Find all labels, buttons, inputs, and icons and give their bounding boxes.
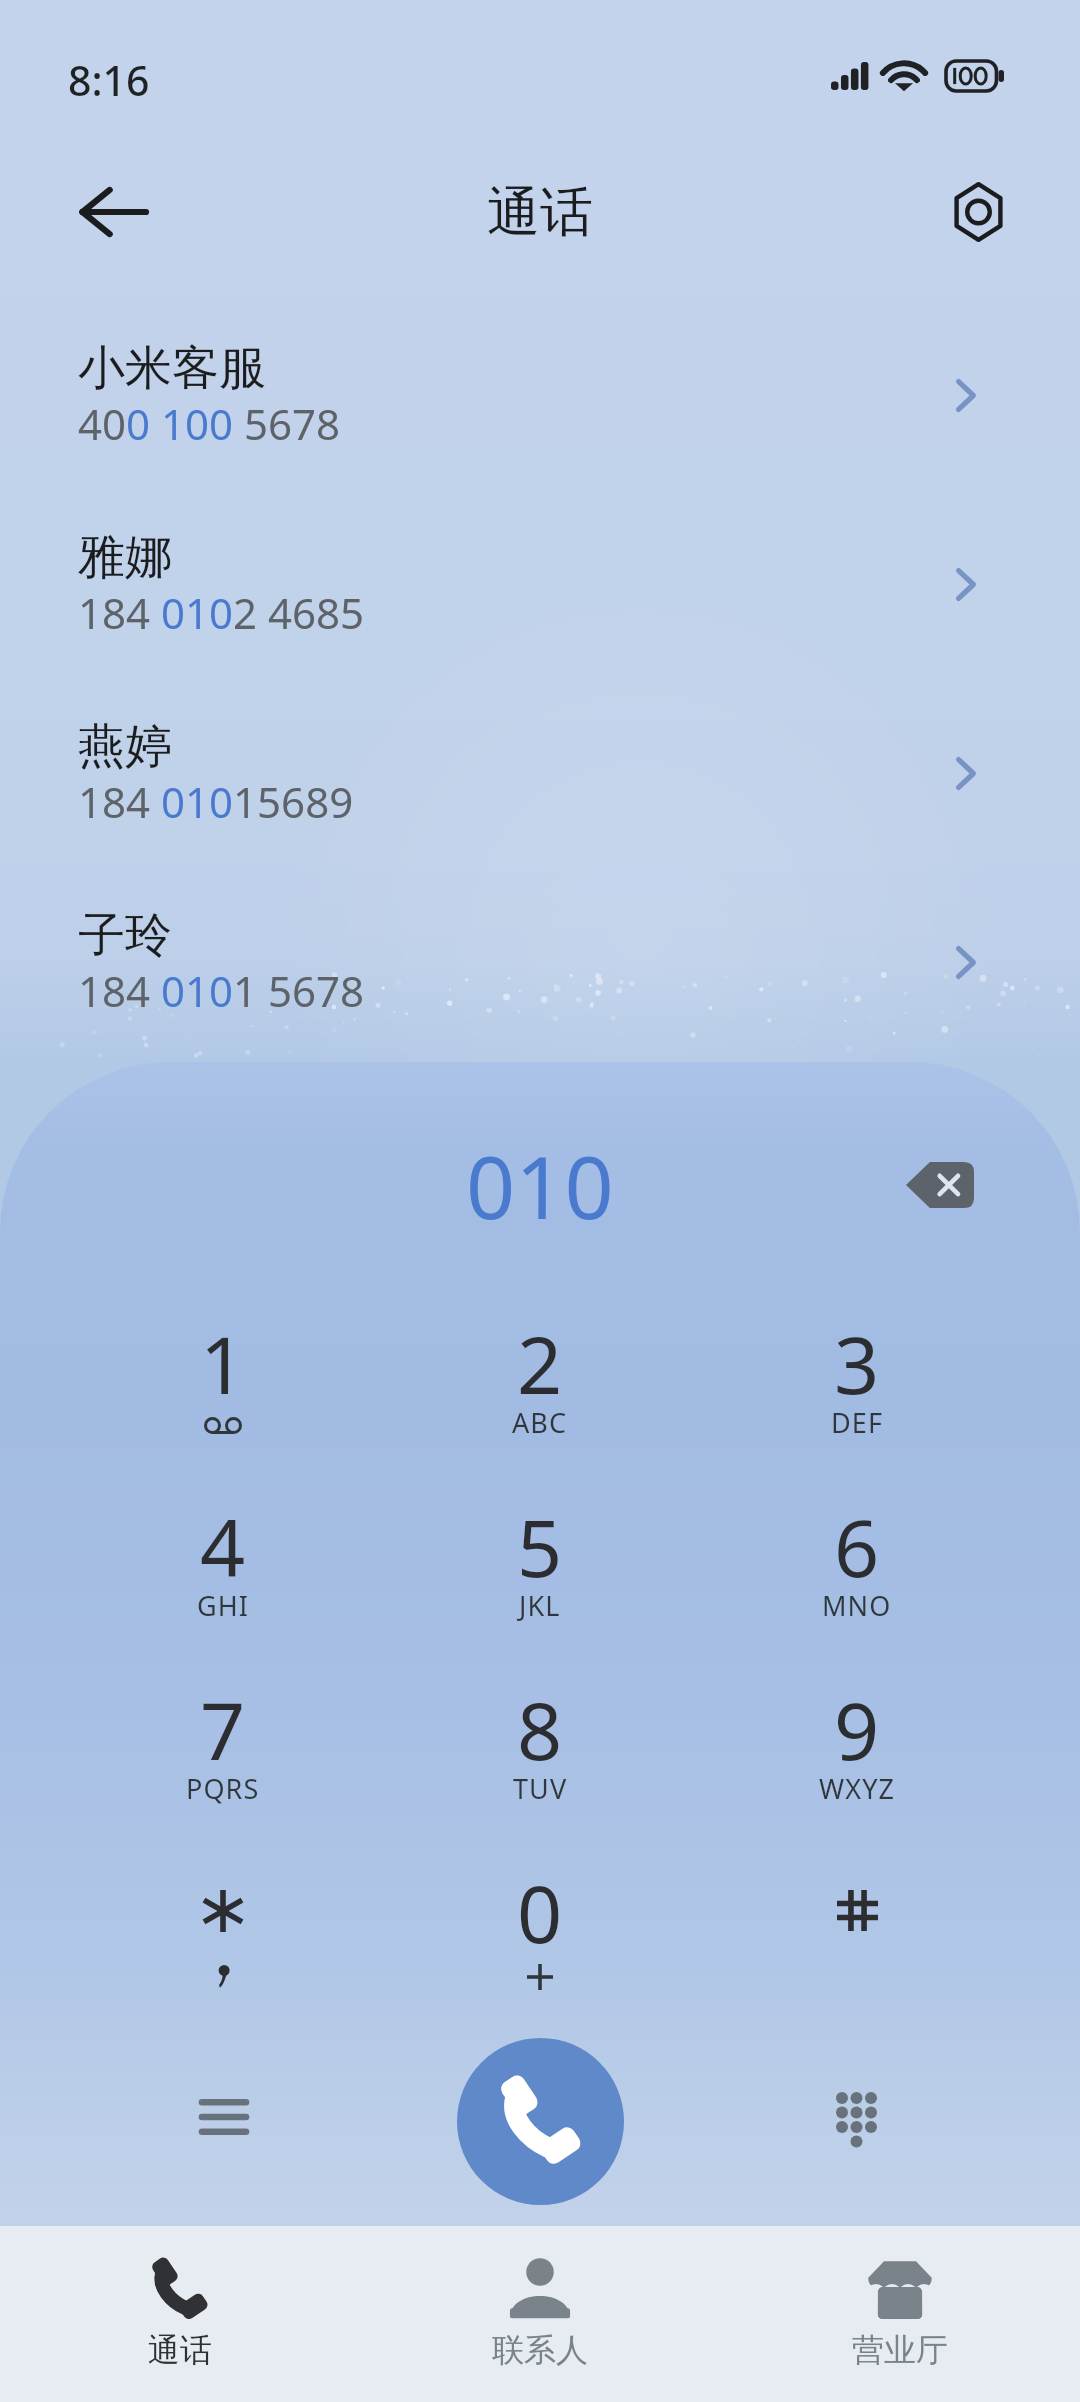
staticText: 184 0102 4685 [78,584,365,641]
staticText: DEF [831,1404,884,1441]
staticText: 1 [200,1310,246,1418]
button[interactable]: 燕婷 [0,656,1080,845]
button[interactable]: 1 [113,1274,333,1457]
staticText: 9 [834,1676,880,1784]
staticText: 雅娜 [78,528,172,587]
staticText: TUV [513,1770,568,1807]
staticText: 3 [834,1310,880,1418]
staticText: 8 [517,1676,563,1784]
button[interactable]: 营业厅 [720,2226,1080,2402]
button[interactable]: Back [48,140,178,284]
staticText: 5 [517,1493,563,1601]
button[interactable]: 6 [747,1457,967,1640]
button[interactable] [113,1823,333,2006]
staticText: 通话 [148,2330,212,2370]
button[interactable]: 雅娜 [0,467,1080,656]
staticText: 2 [517,1310,563,1418]
staticText: 010 [466,1127,614,1244]
button[interactable]: Call [457,2038,624,2205]
staticText: WXYZ [819,1770,896,1807]
staticText: ABC [512,1404,568,1441]
staticText: 0 [517,1859,563,1967]
button[interactable]: 7 [113,1640,333,1823]
staticText: 子玲 [78,906,172,965]
staticText: 400 100 5678 [78,395,341,452]
button[interactable]: 4 [113,1457,333,1640]
button[interactable]: 8 [430,1640,650,1823]
button[interactable]: 9 [747,1640,967,1823]
staticText: JKL [519,1587,561,1624]
button[interactable]: 小米客服 [0,278,1080,467]
button[interactable]: 0 [430,1823,650,2006]
staticText: 184 01015689 [78,773,354,830]
button[interactable]: 3 [747,1274,967,1457]
staticText: GHI [197,1587,250,1624]
staticText: 7 [200,1676,246,1784]
button[interactable]: Keypad [792,2054,920,2182]
staticText: PQRS [186,1770,260,1807]
button[interactable]: 子玲 [0,845,1080,1034]
staticText: 联系人 [492,2330,588,2370]
staticText: 燕婷 [78,717,172,776]
button[interactable]: 通话 [0,2226,360,2402]
button[interactable]: Menu [160,2053,288,2181]
button[interactable]: Delete [887,1132,993,1238]
button[interactable]: 联系人 [360,2226,720,2402]
staticText: 通话 [487,179,593,246]
staticText: 6 [834,1493,880,1601]
staticText: MNO [822,1587,892,1624]
staticText: 184 0101 5678 [78,962,365,1019]
button[interactable] [747,1823,967,2006]
button[interactable]: 2 [430,1274,650,1457]
staticText: 小米客服 [78,339,266,398]
staticText: 4 [200,1493,246,1601]
button[interactable]: 5 [430,1457,650,1640]
button[interactable]: Settings [920,154,1036,270]
staticText: 营业厅 [852,2330,948,2370]
staticText: 8:16 [68,52,150,108]
